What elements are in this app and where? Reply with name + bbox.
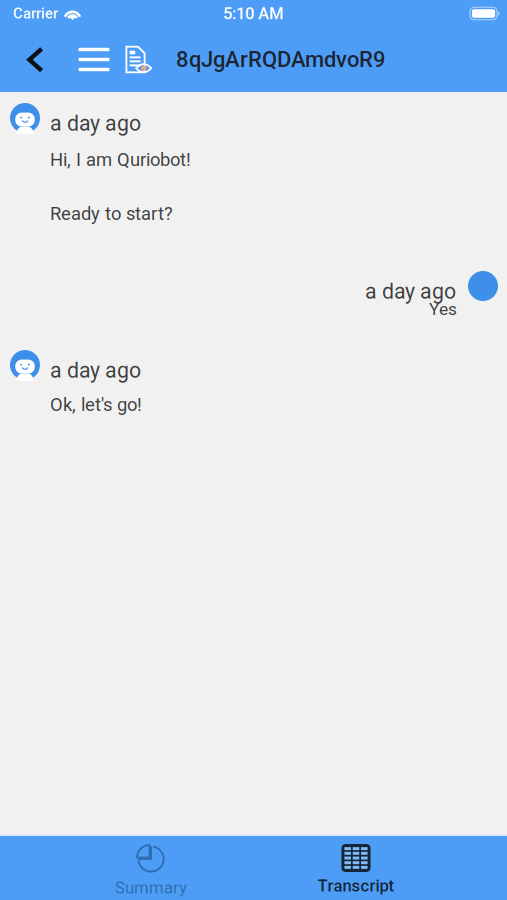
staticText: a day ago <box>365 279 456 304</box>
staticText: a day ago <box>50 111 141 136</box>
staticText: Hi, I am Quriobot! <box>50 149 191 171</box>
button[interactable]: Menu <box>70 27 118 92</box>
staticText: Ok, let's go! <box>50 394 142 416</box>
staticText: Carrier <box>13 5 58 22</box>
staticText: Transcript <box>317 876 394 895</box>
staticText: 5:10 AM <box>223 4 284 23</box>
staticText: Yes <box>429 299 457 319</box>
button[interactable]: Summary <box>48 834 253 900</box>
staticText: Summary <box>115 878 187 897</box>
button[interactable]: Preview document <box>118 27 153 92</box>
button[interactable]: Back <box>9 27 70 92</box>
staticText: a day ago <box>50 358 141 383</box>
staticText: Ready to start? <box>50 203 173 225</box>
staticText: 8qJgArRQDAmdvoR9 <box>176 47 386 72</box>
button[interactable]: Transcript <box>253 834 458 900</box>
